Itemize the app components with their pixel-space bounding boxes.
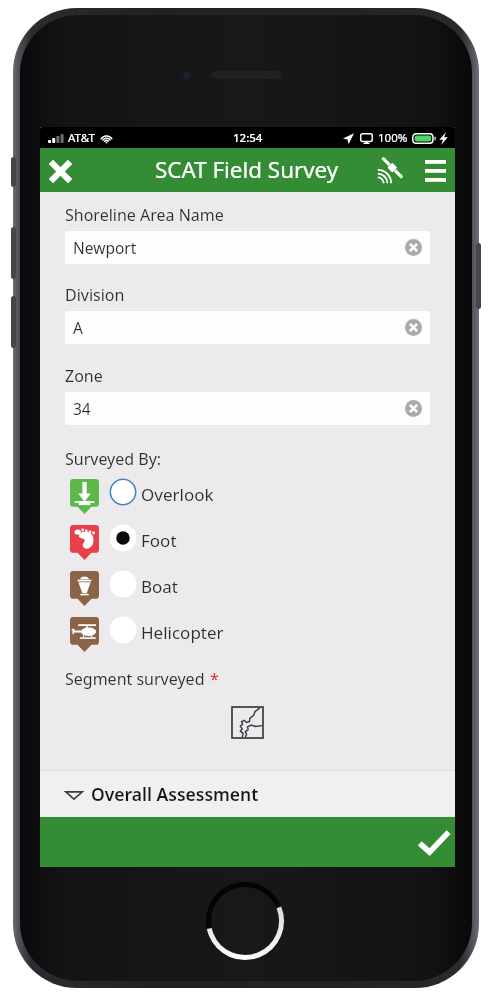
- staticText: Overlook: [141, 483, 214, 506]
- staticText: Zone: [65, 365, 103, 387]
- button[interactable]: Clear Division: [405, 319, 422, 336]
- button[interactable]: A: [65, 311, 430, 344]
- button[interactable]: Save survey: [417, 825, 451, 859]
- staticText: Newport: [73, 237, 137, 258]
- staticText: SCAT Field Survey: [155, 154, 339, 185]
- button[interactable]: Clear Zone: [405, 400, 422, 417]
- button[interactable]: Home: [206, 882, 284, 960]
- staticText: Foot: [141, 529, 177, 552]
- staticText: Surveyed By:: [65, 448, 162, 470]
- button[interactable]: Boat: [40, 563, 455, 609]
- staticText: 34: [73, 398, 91, 419]
- button[interactable]: Overall Assessment: [40, 771, 455, 816]
- button[interactable]: Draw segment on map: [220, 695, 275, 750]
- button[interactable]: Helicopter: [40, 609, 455, 655]
- staticText: 12:54: [233, 130, 263, 146]
- staticText: Boat: [141, 575, 179, 598]
- staticText: Shoreline Area Name: [65, 204, 224, 226]
- staticText: Segment surveyed: [65, 668, 205, 690]
- staticText: AT&T: [68, 130, 95, 146]
- button[interactable]: Overlook: [40, 471, 455, 517]
- staticText: Helicopter: [141, 621, 224, 644]
- button[interactable]: Close: [43, 154, 75, 186]
- button[interactable]: Menu: [420, 155, 451, 186]
- button[interactable]: Clear Shoreline Area Name: [405, 239, 422, 256]
- button[interactable]: GPS status: [374, 153, 407, 186]
- staticText: *: [210, 668, 219, 690]
- staticText: A: [73, 317, 83, 338]
- staticText: Overall Assessment: [91, 782, 259, 806]
- staticText: 100%: [378, 130, 408, 146]
- button[interactable]: Newport: [65, 231, 430, 264]
- button[interactable]: Foot: [40, 517, 455, 563]
- button[interactable]: 34: [65, 392, 430, 425]
- staticText: Division: [65, 284, 125, 306]
